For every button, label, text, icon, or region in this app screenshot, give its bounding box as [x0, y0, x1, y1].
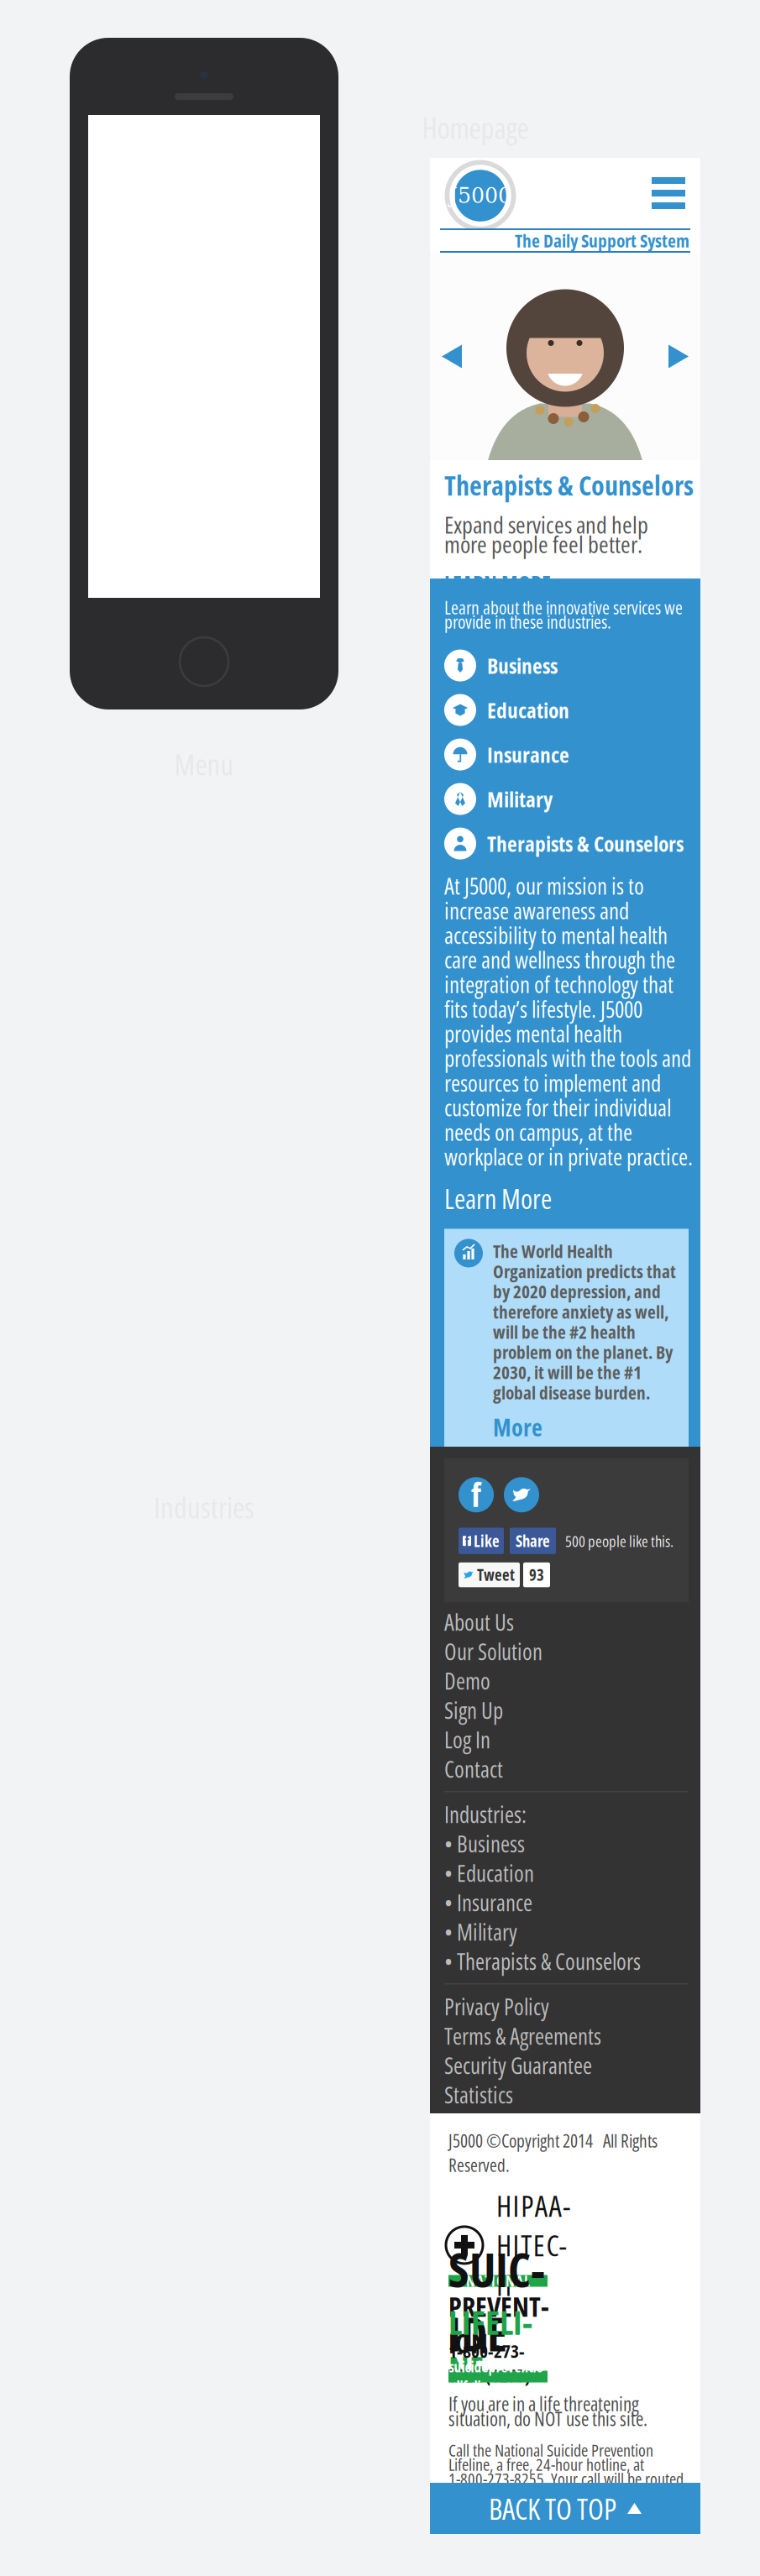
button[interactable]: LEARN MORE — [444, 560, 567, 597]
button[interactable]: Sign Up — [444, 1695, 696, 1725]
staticText: Sign Up — [444, 1695, 503, 1725]
staticText: • Business — [444, 1828, 525, 1859]
staticText: Menu — [174, 744, 234, 784]
button[interactable]: • Business — [444, 1829, 696, 1858]
staticText: Learn More — [444, 1180, 552, 1217]
staticText: About Us — [444, 1607, 514, 1637]
staticText: The Daily Support System — [515, 228, 689, 253]
button[interactable]: Facebook — [459, 1472, 494, 1518]
staticText: Therapists & Counselors — [487, 829, 684, 858]
button[interactable]: Demo — [444, 1666, 696, 1695]
button[interactable]: Previous slide — [433, 336, 470, 377]
staticText: The World Health Organization predicts t… — [493, 1239, 676, 1405]
button[interactable]: Learn More — [444, 1172, 552, 1222]
staticText: 500 people like this. — [565, 1530, 674, 1552]
staticText: Therapists & Counselors — [444, 467, 694, 503]
staticText: • Education — [444, 1858, 534, 1888]
button[interactable]: Log In — [444, 1725, 696, 1754]
staticText: Terms & Agreements — [444, 2021, 601, 2051]
staticText: Homepage — [422, 108, 529, 147]
staticText: More — [493, 1411, 542, 1443]
staticText: f — [465, 1531, 469, 1551]
button[interactable]: Military — [444, 777, 696, 821]
button[interactable]: Business — [444, 643, 696, 688]
button[interactable]: Menu — [652, 169, 700, 217]
button[interactable]: Insurance — [444, 732, 696, 777]
staticText: Insurance — [487, 740, 569, 769]
staticText: 1-800-273-TALK (8255) — [448, 2339, 531, 2388]
button[interactable]: Tweet — [459, 1562, 520, 1587]
staticText: At J5000, our mission is to increase awa… — [444, 871, 693, 1172]
staticText: Contact — [444, 1754, 503, 1784]
staticText: Business — [487, 651, 558, 680]
button[interactable]: Share — [510, 1528, 556, 1554]
staticText: 93 — [529, 1564, 544, 1585]
staticText: Education — [487, 696, 569, 725]
staticText: LIFELINE — [448, 2299, 532, 2390]
staticText: Statistics — [444, 2080, 513, 2110]
staticText: Expand services and help more people fee… — [444, 508, 648, 560]
staticText: f — [471, 1471, 481, 1517]
staticText: Our Solution — [444, 1636, 542, 1667]
button[interactable]: • Education — [444, 1858, 696, 1888]
staticText: PREVENTION — [448, 2288, 549, 2361]
button[interactable]: Our Solution — [444, 1637, 696, 1666]
staticText: • Therapists & Counselors — [444, 1946, 641, 1977]
button[interactable]: Education — [444, 688, 696, 732]
staticText: Tweet — [477, 1564, 515, 1585]
staticText: HIPAA-HITECH — [496, 2186, 570, 2305]
staticText: Learn about the innovative services we p… — [444, 595, 683, 634]
staticText: • Insurance — [444, 1887, 532, 1918]
button[interactable]: • Insurance — [444, 1888, 696, 1917]
staticText: J5000 ©Copyright 2014 All Rights Reserve… — [448, 2128, 658, 2177]
staticText: SUICIDE — [448, 2237, 545, 2365]
button[interactable]: Security Guarantee — [444, 2051, 696, 2080]
staticText: Security Guarantee — [444, 2050, 592, 2081]
button[interactable]: Privacy Policy — [444, 1992, 696, 2021]
button[interactable]: More — [454, 1405, 679, 1443]
button[interactable]: Twitter — [504, 1477, 539, 1512]
staticText: Industries: — [444, 1799, 527, 1830]
button[interactable]: Statistics — [444, 2080, 696, 2109]
staticText: BACK TO TOP — [489, 2489, 616, 2528]
staticText: If you are in a life threatening situati… — [448, 2391, 647, 2432]
button[interactable]: About Us — [444, 1607, 696, 1637]
staticText: Military — [487, 785, 553, 814]
button[interactable]: Therapists & Counselors — [444, 821, 696, 866]
staticText: Privacy Policy — [444, 1991, 549, 2022]
button[interactable]: • Military — [444, 1917, 696, 1947]
button[interactable]: • Therapists & Counselors — [444, 1947, 696, 1976]
staticText: NATIONAL — [466, 2271, 530, 2291]
staticText: Like — [474, 1530, 500, 1552]
staticText: • Military — [444, 1917, 517, 1947]
staticText: suicidepreventionlifeline.org — [449, 2357, 547, 2396]
staticText: J5000 — [449, 183, 511, 208]
button[interactable]: BACK TO TOP — [430, 2483, 700, 2534]
staticText: Call the National Suicide Prevention Lif… — [448, 2439, 684, 2534]
staticText: Demo — [444, 1666, 490, 1696]
button[interactable]: f — [459, 1528, 504, 1554]
staticText: Industries — [154, 1487, 254, 1527]
button[interactable]: Next slide — [660, 336, 697, 377]
button[interactable]: Contact — [444, 1754, 696, 1784]
staticText: Log In — [444, 1724, 490, 1755]
button[interactable]: Industries: — [444, 1800, 696, 1829]
staticText: LEARN MORE — [444, 568, 551, 597]
staticText: Share — [516, 1530, 550, 1552]
button[interactable]: Terms & Agreements — [444, 2021, 696, 2051]
